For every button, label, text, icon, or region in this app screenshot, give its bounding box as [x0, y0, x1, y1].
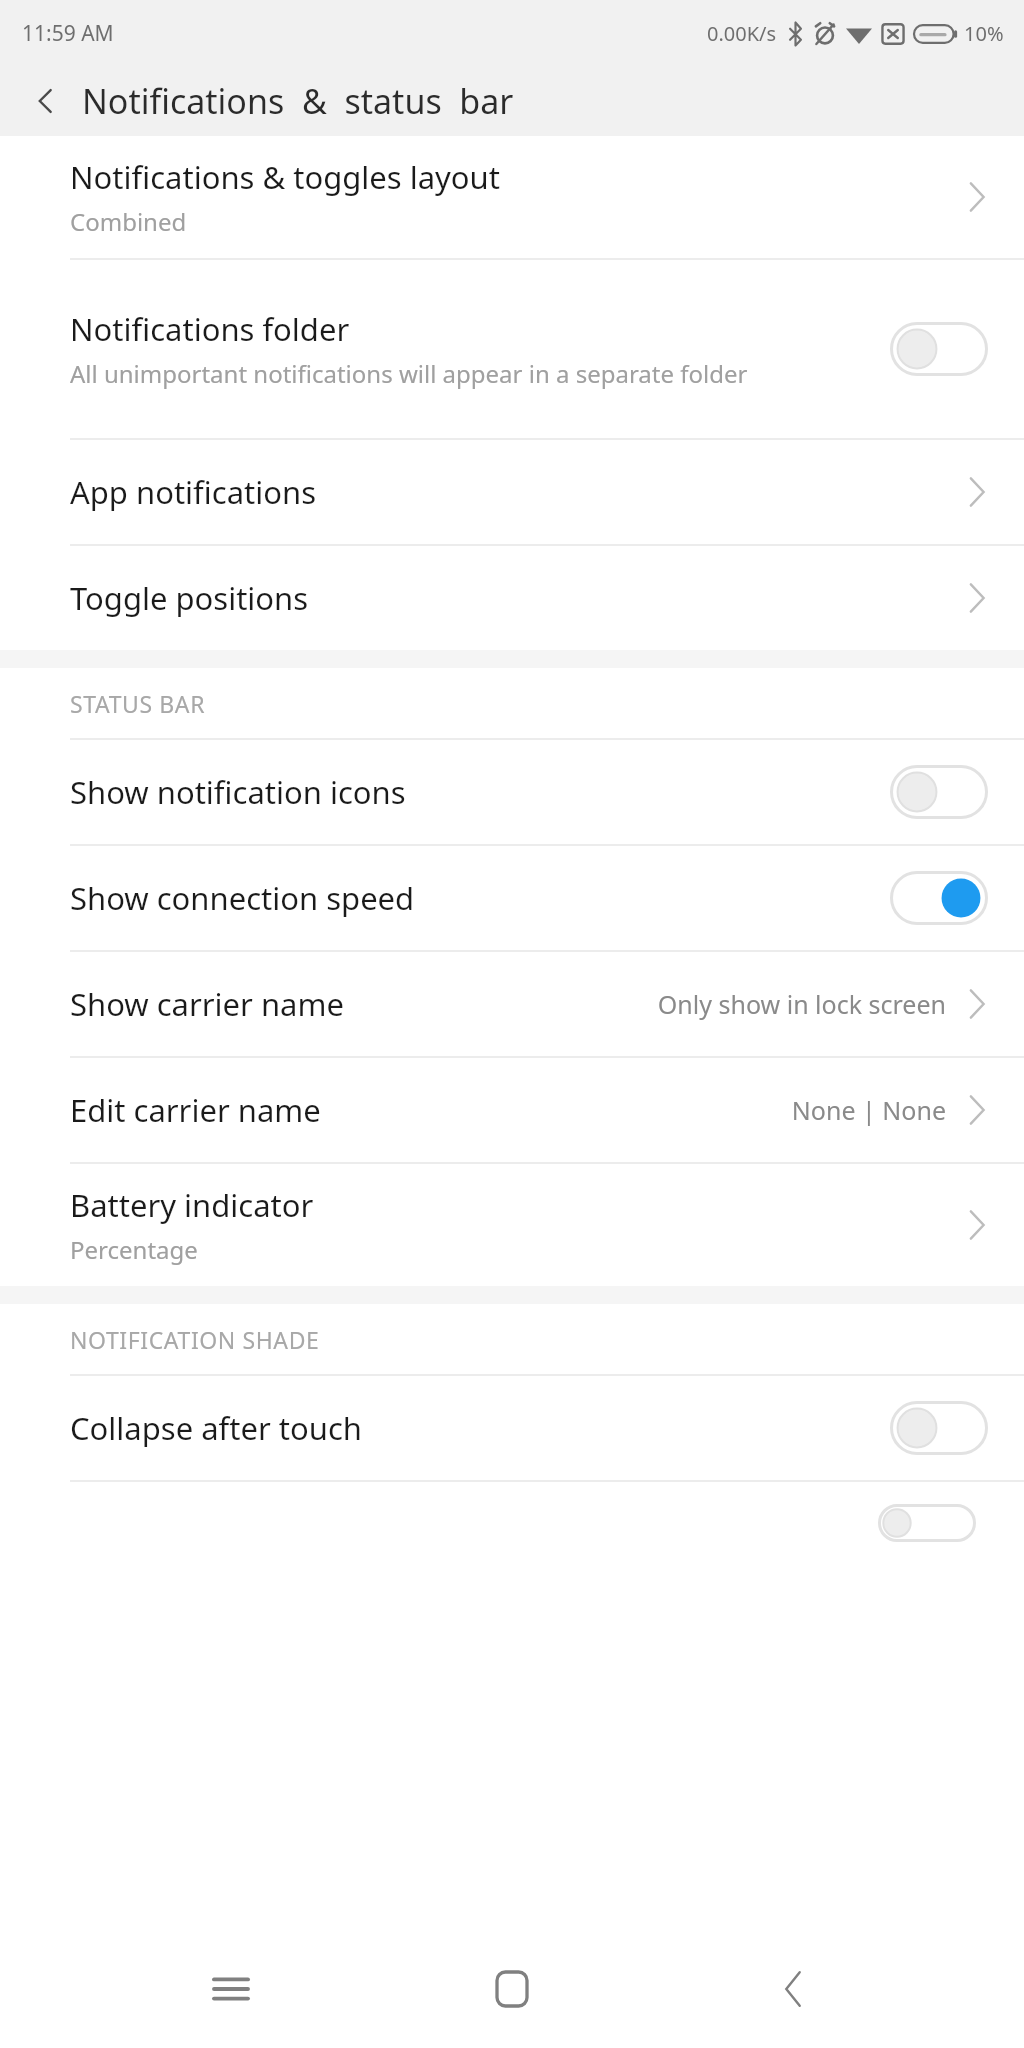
staticText: App notifications [70, 471, 316, 513]
staticText: STATUS BAR [70, 688, 206, 719]
button[interactable]: Toggle positions [0, 546, 1024, 650]
staticText: Notifications & status bar [82, 78, 514, 124]
staticText: 11:59 AM [22, 19, 114, 48]
button[interactable]: Toggle off [878, 1504, 976, 1542]
button[interactable]: Back [743, 1939, 843, 2039]
staticText: 10% [964, 20, 1004, 47]
button[interactable]: Show connection speed [0, 846, 1024, 950]
staticText: 0.00K/s [707, 20, 777, 47]
staticText: Combined [70, 205, 187, 238]
button[interactable]: Battery indicator [0, 1164, 1024, 1286]
button[interactable]: Toggle off [890, 765, 988, 819]
staticText: Notifications folder [70, 308, 350, 350]
staticText: Show carrier name [70, 983, 344, 1025]
button[interactable]: Toggle off [890, 1401, 988, 1455]
staticText: Show notification icons [70, 771, 406, 813]
staticText: Show connection speed [70, 877, 415, 919]
button[interactable]: App notifications [0, 440, 1024, 544]
staticText: Edit carrier name [70, 1089, 321, 1131]
button[interactable]: Toggle off [890, 322, 988, 376]
button[interactable]: Notifications folder [0, 260, 1024, 438]
staticText: Percentage [70, 1233, 198, 1266]
staticText: All unimportant notifications will appea… [70, 357, 748, 390]
staticText: None | None [791, 1093, 946, 1127]
button[interactable]: Recents [181, 1939, 281, 2039]
button[interactable]: Toggle on [890, 871, 988, 925]
staticText: NOTIFICATION SHADE [70, 1324, 320, 1355]
button[interactable]: Collapse after touch [0, 1376, 1024, 1480]
button[interactable]: Show carrier name [0, 952, 1024, 1056]
button[interactable]: Edit carrier name [0, 1058, 1024, 1162]
button[interactable]: Notifications & toggles layout [0, 136, 1024, 258]
staticText: Only show in lock screen [657, 987, 946, 1021]
staticText: Collapse after touch [70, 1407, 362, 1449]
button[interactable]: Back [18, 73, 74, 129]
staticText: Battery indicator [70, 1184, 314, 1226]
staticText: Toggle positions [70, 577, 309, 619]
staticText: Notifications & toggles layout [70, 156, 500, 198]
button[interactable]: Show notification icons [0, 740, 1024, 844]
button[interactable]: Home [462, 1939, 562, 2039]
